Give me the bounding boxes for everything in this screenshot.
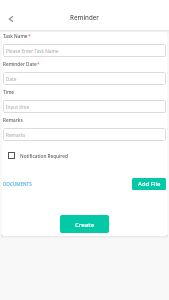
button[interactable]: Create [60, 215, 109, 233]
staticText: Add File [138, 180, 161, 188]
staticText: Reminder [70, 13, 99, 21]
staticText: Reminder Date [3, 61, 37, 67]
staticText: Notification Required [20, 153, 68, 159]
staticText: * [37, 61, 40, 67]
button[interactable]: Date [3, 72, 166, 85]
staticText: Remarks [6, 132, 26, 138]
button[interactable]: Input time [3, 100, 166, 113]
staticText: Remarks [3, 117, 23, 123]
button[interactable]: Add File [132, 178, 166, 190]
button[interactable]: Notification Required [3, 151, 71, 160]
button[interactable]: Back [2, 8, 20, 26]
staticText: Task Name [3, 33, 28, 39]
button[interactable]: Please Enter Task Name [3, 44, 166, 57]
staticText: Create [75, 220, 95, 228]
staticText: DOCUMENTS [3, 181, 32, 187]
staticText: * [28, 33, 31, 39]
staticText: Date [6, 76, 17, 82]
staticText: Input time [6, 104, 30, 110]
staticText: Please Enter Task Name [6, 48, 59, 54]
button[interactable]: Remarks [3, 128, 166, 141]
staticText: Time [3, 89, 15, 95]
